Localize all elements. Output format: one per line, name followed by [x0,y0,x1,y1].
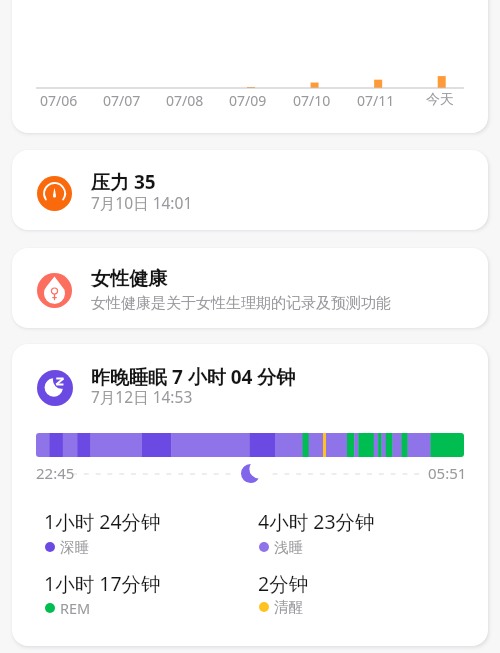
button[interactable]: 女性健康 [12,248,488,328]
other: 压力 [37,176,72,211]
staticText: 7月10日 14:01 [91,192,193,213]
staticText: 07/06 [40,91,78,110]
staticText: 压力 35 [91,169,156,195]
staticText: 05:51 [428,463,467,483]
staticText: 07/11 [357,91,395,110]
button[interactable]: 07/06 [12,0,488,133]
staticText: 07/07 [103,91,141,110]
other: 睡眠 [37,370,73,406]
staticText: 女性健康是关于女性生理期的记录及预测功能 [91,294,391,313]
staticText: 22:45 [36,463,75,483]
button[interactable]: 睡眠 [12,344,488,646]
staticText: 清醒 [274,598,303,616]
staticText: 7月12日 14:53 [91,386,193,407]
staticText: REM [60,598,91,618]
button[interactable]: 压力 [12,150,488,230]
staticText: 07/10 [293,91,331,110]
staticText: 1小时 24分钟 [44,508,161,535]
staticText: 浅睡 [274,538,303,556]
staticText: 07/09 [229,91,267,110]
staticText: 昨晚睡眠 7 小时 04 分钟 [91,364,296,390]
staticText: 1小时 17分钟 [44,570,161,597]
staticText: 深睡 [60,538,89,556]
staticText: 07/08 [166,91,204,110]
staticText: 4小时 23分钟 [258,508,375,535]
staticText: 女性健康 [91,267,167,291]
staticText: 今天 [426,91,454,109]
other: 女性健康 [37,273,72,308]
staticText: 2分钟 [258,570,309,597]
